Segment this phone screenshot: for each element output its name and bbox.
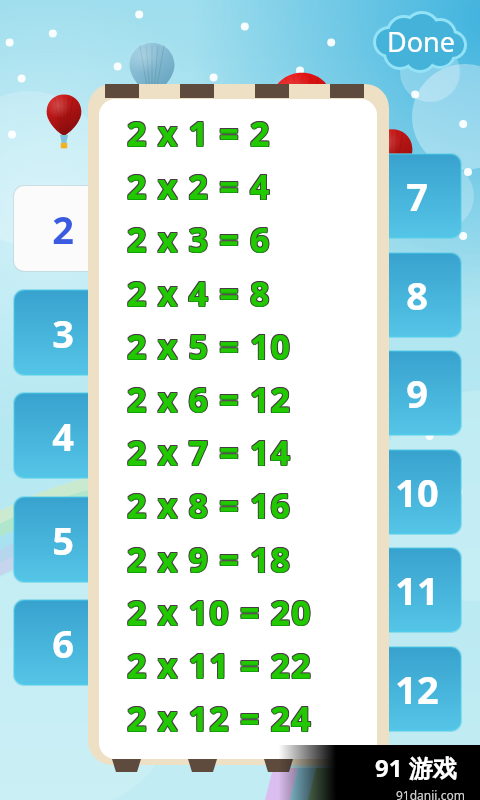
staticText: 2 x 5 = 10 — [128, 324, 293, 370]
staticText: 2 x 1 = 2 — [127, 109, 271, 155]
button[interactable]: 2 — [12, 184, 114, 273]
staticText: 2 x 4 = 8 — [128, 270, 272, 316]
staticText: 2 x 10 = 20 — [127, 588, 312, 634]
staticText: 2 x 2 = 4 — [126, 162, 270, 208]
staticText: 2 x 1 = 2 — [126, 110, 270, 156]
staticText: 2 x 7 = 14 — [128, 429, 293, 475]
staticText: 2 x 5 = 10 — [126, 323, 291, 369]
staticText: 2 x 10 = 20 — [127, 590, 312, 636]
staticText: 2 x 2 = 4 — [128, 162, 272, 208]
button[interactable]: 3 — [12, 288, 114, 377]
staticText: 2 x 12 = 24 — [127, 696, 312, 742]
staticText: 2 x 9 = 18 — [128, 535, 293, 581]
staticText: 2 x 3 = 6 — [127, 217, 271, 263]
button[interactable]: 5 — [12, 495, 114, 584]
staticText: 2 x 4 = 8 — [127, 271, 271, 317]
staticText: 2 x 9 = 18 — [128, 537, 293, 583]
button[interactable]: 9 — [370, 349, 463, 437]
staticText: 2 x 7 = 14 — [127, 430, 292, 476]
button[interactable]: Done — [374, 15, 466, 70]
button[interactable]: 10 — [370, 448, 463, 536]
staticText: 11 — [395, 564, 439, 616]
staticText: 2 x 5 = 10 — [126, 322, 291, 368]
staticText: 2 x 2 = 4 — [126, 163, 270, 209]
staticText: 2 x 4 = 8 — [126, 269, 270, 315]
staticText: 2 x 11 = 22 — [127, 643, 312, 689]
staticText: 2 x 12 = 24 — [128, 694, 313, 740]
staticText: 2 x 2 = 4 — [128, 163, 272, 209]
button[interactable]: 4 — [12, 391, 114, 480]
staticText: 2 x 3 = 6 — [127, 216, 271, 262]
staticText: 2 x 7 = 14 — [127, 429, 292, 475]
staticText: 2 x 8 = 16 — [128, 483, 293, 529]
staticText: 2 x 9 = 18 — [126, 537, 291, 583]
staticText: 2 x 11 = 22 — [126, 642, 311, 688]
staticText: 2 x 6 = 12 — [126, 376, 291, 422]
staticText: 2 x 6 = 12 — [127, 377, 292, 423]
staticText: 2 x 4 = 8 — [127, 270, 271, 316]
staticText: 2 x 8 = 16 — [126, 482, 291, 528]
staticText: 2 x 10 = 20 — [128, 590, 313, 636]
staticText: 2 x 10 = 20 — [128, 588, 313, 634]
staticText: 2 x 12 = 24 — [127, 696, 312, 742]
staticText: 2 x 9 = 18 — [127, 536, 292, 582]
staticText: 2 x 5 = 10 — [127, 322, 292, 368]
staticText: 2 x 12 = 24 — [126, 694, 311, 740]
staticText: 2 x 9 = 18 — [128, 536, 293, 582]
staticText: Done — [387, 23, 455, 60]
staticText: 2 x 1 = 2 — [126, 109, 270, 155]
staticText: 2 x 10 = 20 — [126, 590, 311, 636]
staticText: 6 — [52, 617, 74, 669]
staticText: 9 — [406, 367, 428, 419]
staticText: 2 x 3 = 6 — [128, 217, 272, 263]
staticText: 2 x 2 = 4 — [126, 164, 270, 210]
staticText: 2 x 9 = 18 — [127, 535, 292, 581]
staticText: 91 游戏 — [375, 751, 457, 784]
staticText: 2 x 5 = 10 — [127, 323, 292, 369]
staticText: 2 x 10 = 20 — [127, 590, 312, 636]
staticText: 2 x 8 = 16 — [128, 482, 293, 528]
button[interactable]: 11 — [370, 546, 463, 634]
staticText: 2 x 2 = 4 — [127, 164, 271, 210]
staticText: 2 x 8 = 16 — [127, 483, 292, 529]
staticText: 2 x 2 = 4 — [127, 164, 271, 210]
staticText: 2 x 6 = 12 — [127, 376, 292, 422]
staticText: 2 x 12 = 24 — [127, 695, 312, 741]
staticText: 2 x 4 = 8 — [127, 271, 271, 317]
staticText: 2 x 1 = 2 — [126, 111, 270, 157]
staticText: 2 x 7 = 14 — [128, 428, 293, 474]
staticText: 2 x 7 = 14 — [126, 428, 291, 474]
staticText: 2 x 11 = 22 — [127, 642, 312, 688]
staticText: 2 x 7 = 14 — [127, 430, 292, 476]
staticText: 2 x 12 = 24 — [128, 696, 313, 742]
staticText: 2 x 11 = 22 — [127, 643, 312, 689]
staticText: 2 x 3 = 6 — [127, 217, 271, 263]
staticText: 2 x 9 = 18 — [127, 537, 292, 583]
staticText: 2 x 6 = 12 — [128, 375, 293, 421]
staticText: 2 x 5 = 10 — [128, 323, 293, 369]
button[interactable]: 7 — [370, 152, 463, 240]
staticText: 2 x 6 = 12 — [126, 377, 291, 423]
staticText: 2 x 3 = 6 — [126, 217, 270, 263]
staticText: 2 x 11 = 22 — [127, 641, 312, 687]
staticText: 2 x 6 = 12 — [128, 377, 293, 423]
button[interactable]: 12 — [370, 645, 463, 733]
staticText: 2 x 3 = 6 — [126, 216, 270, 262]
staticText: 2 x 9 = 18 — [127, 537, 292, 583]
staticText: 2 x 1 = 2 — [127, 111, 271, 157]
staticText: 2 x 3 = 6 — [128, 216, 272, 262]
staticText: 2 x 1 = 2 — [127, 110, 271, 156]
staticText: 2 x 4 = 8 — [126, 271, 270, 317]
staticText: 2 x 3 = 6 — [128, 215, 272, 261]
staticText: 2 x 12 = 24 — [127, 694, 312, 740]
staticText: 8 — [406, 269, 428, 321]
staticText: 2 x 11 = 22 — [126, 641, 311, 687]
staticText: 2 x 7 = 14 — [127, 428, 292, 474]
button[interactable]: 6 — [12, 598, 114, 687]
staticText: 2 x 5 = 10 — [127, 324, 292, 370]
staticText: 3 — [52, 307, 74, 359]
staticText: 2 x 6 = 12 — [127, 375, 292, 421]
staticText: 2 x 10 = 20 — [127, 589, 312, 635]
button[interactable]: 8 — [370, 251, 463, 339]
staticText: 2 x 6 = 12 — [128, 376, 293, 422]
